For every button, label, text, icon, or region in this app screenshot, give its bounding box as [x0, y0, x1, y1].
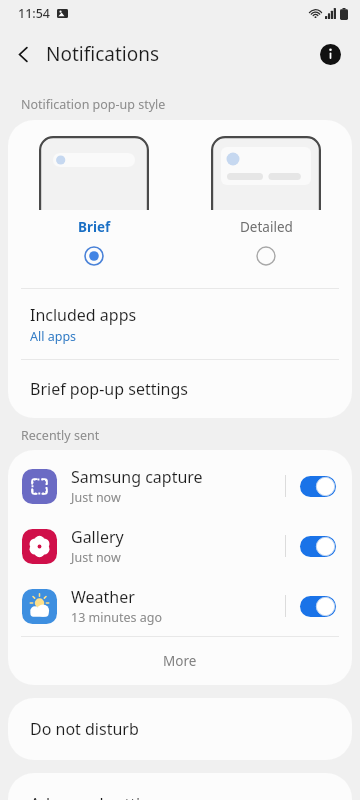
button[interactable]: Gallery — [8, 516, 352, 576]
staticText: Weather — [71, 586, 135, 608]
staticText: All apps — [30, 328, 77, 345]
button[interactable]: Weather — [8, 576, 352, 636]
staticText: Just now — [71, 489, 121, 506]
staticText: Just now — [71, 549, 121, 566]
staticText: Advanced settings — [30, 793, 168, 800]
button[interactable]: Back — [0, 31, 46, 77]
staticText: Recently sent — [21, 427, 100, 444]
button[interactable]: Samsung capture — [8, 456, 352, 516]
button[interactable]: Gallery notifications toggle — [298, 529, 338, 563]
staticText: Included apps — [30, 304, 137, 326]
button[interactable]: More — [8, 637, 352, 685]
staticText: Samsung capture — [71, 466, 203, 488]
button[interactable]: Do not disturb — [8, 698, 352, 760]
staticText: Brief — [78, 218, 111, 236]
button[interactable]: Information — [309, 33, 351, 75]
button[interactable]: Included apps — [8, 289, 352, 359]
staticText: 13 minutes ago — [71, 609, 162, 626]
staticText: More — [163, 652, 197, 670]
staticText: Gallery — [71, 526, 124, 548]
button[interactable]: Advanced settings — [8, 773, 352, 800]
staticText: Do not disturb — [30, 718, 139, 740]
button[interactable]: Weather notifications toggle — [298, 589, 338, 623]
button[interactable]: Brief — [8, 134, 180, 272]
staticText: Notification pop-up style — [21, 96, 166, 113]
button[interactable]: Detailed — [180, 134, 352, 272]
staticText: Detailed — [240, 218, 293, 236]
button[interactable]: Brief pop-up settings — [8, 360, 352, 418]
staticText: 11:54 — [18, 5, 51, 22]
staticText: Notifications — [46, 41, 160, 67]
button[interactable]: Samsung capture notifications toggle — [298, 469, 338, 503]
staticText: Brief pop-up settings — [30, 378, 188, 400]
